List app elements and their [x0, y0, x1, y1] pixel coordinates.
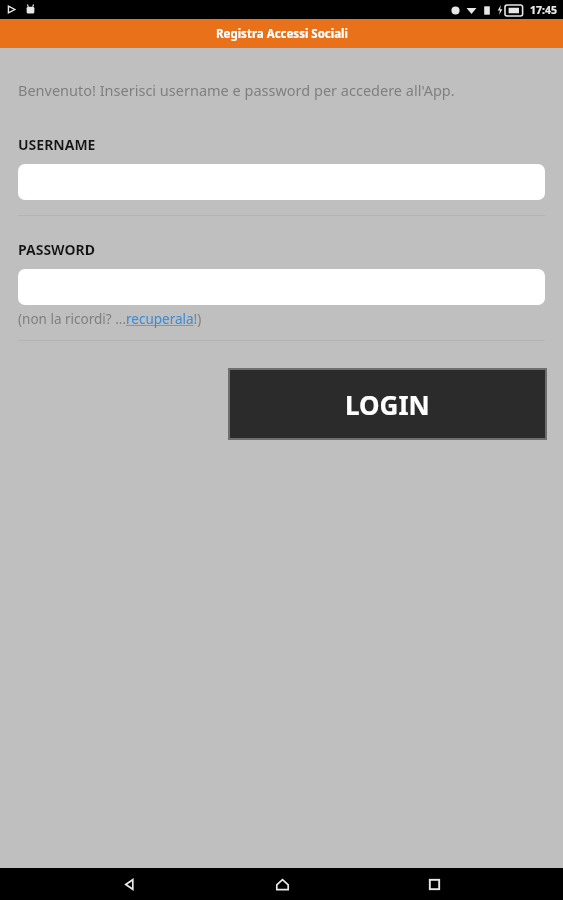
staticText: Benvenuto! Inserisci username e password…	[18, 80, 455, 100]
button[interactable]: LOGIN	[230, 370, 545, 438]
staticText: USERNAME	[18, 135, 96, 154]
button[interactable]: Recent apps	[411, 868, 457, 900]
button[interactable]: Home	[259, 868, 305, 900]
staticText: 17:45	[530, 3, 557, 17]
staticText: LOGIN	[345, 387, 430, 422]
button[interactable]: (non la ricordi? ...recuperala!)	[18, 310, 202, 328]
staticText: Registra Accessi Sociali	[216, 26, 348, 42]
staticText: (non la ricordi? ...recuperala!)	[18, 310, 202, 328]
button[interactable]: Back	[106, 868, 152, 900]
staticText: PASSWORD	[18, 240, 96, 259]
